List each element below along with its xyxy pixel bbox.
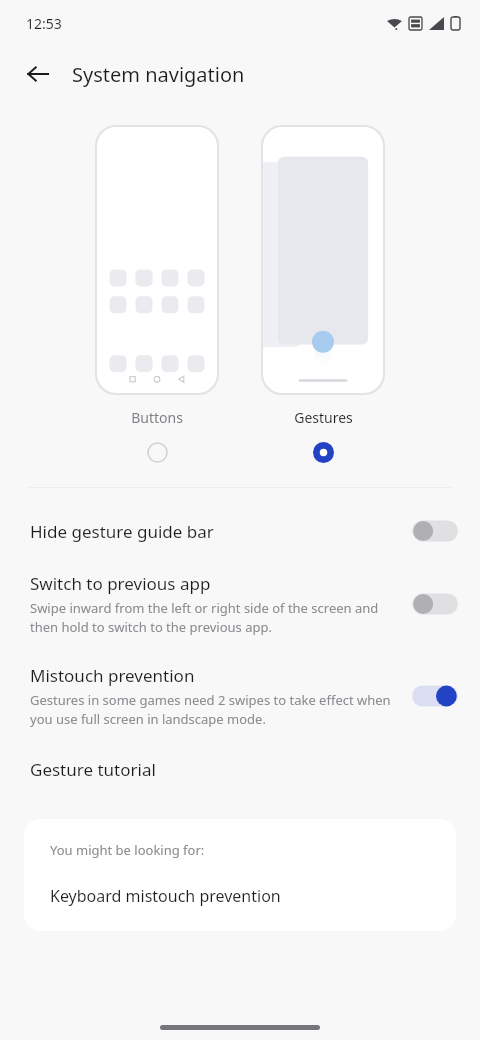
staticText: System navigation [72, 61, 245, 88]
button[interactable]: Switch to previous app [0, 558, 480, 650]
button[interactable]: Gesture tutorial [0, 742, 480, 797]
button[interactable]: Mistouch prevention [0, 650, 480, 742]
button[interactable]: Toggle on [412, 683, 458, 709]
staticText: Gesture tutorial [30, 758, 156, 781]
staticText: Buttons [131, 408, 183, 427]
staticText: Gestures [294, 408, 353, 427]
button[interactable]: Toggle off [412, 518, 458, 544]
staticText: Keyboard mistouch prevention [50, 885, 281, 907]
staticText: Gestures in some games need 2 swipes to … [30, 691, 400, 728]
staticText: Mistouch prevention [30, 664, 195, 687]
staticText: Swipe inward from the left or right side… [30, 599, 400, 636]
button[interactable]: Hide gesture guide bar [0, 504, 480, 558]
button[interactable]: Toggle off [412, 591, 458, 617]
staticText: 12:53 [26, 14, 62, 33]
button[interactable]: Back [14, 50, 62, 98]
button[interactable]: You might be looking for: [24, 819, 456, 931]
staticText: Switch to previous app [30, 572, 211, 595]
button[interactable]: Buttons [92, 124, 222, 465]
button[interactable]: Gestures [258, 124, 388, 465]
staticText: Hide gesture guide bar [30, 520, 214, 543]
staticText: You might be looking for: [50, 841, 205, 859]
